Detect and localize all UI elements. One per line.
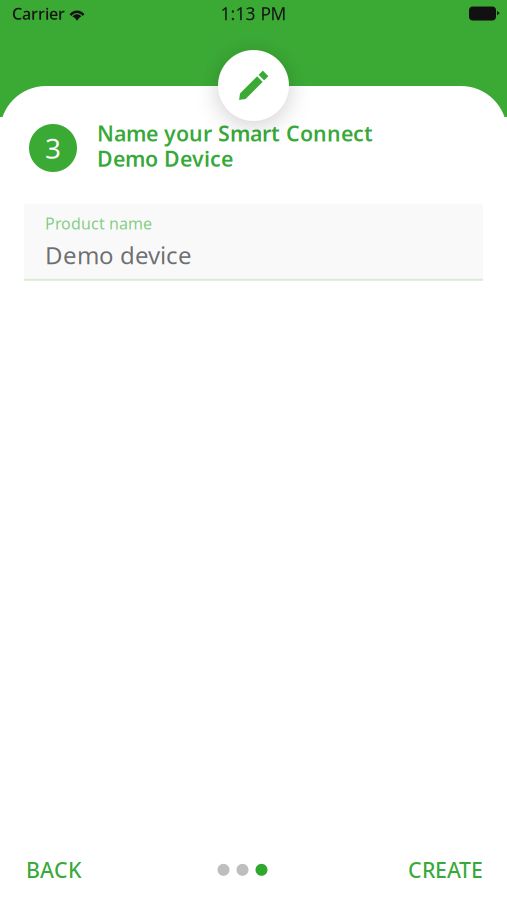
staticText: Product name — [45, 213, 152, 234]
staticText: BACK — [26, 856, 81, 884]
staticText: Name your Smart Connect — [97, 119, 373, 147]
staticText: Carrier — [12, 3, 65, 24]
staticText: 1:13 PM — [220, 2, 286, 25]
staticText: CREATE — [408, 856, 483, 884]
button[interactable]: CREATE — [384, 842, 507, 898]
staticText: Demo device — [45, 239, 192, 271]
staticText: 3 — [45, 129, 61, 167]
button[interactable]: BACK — [0, 842, 107, 898]
staticText: Demo Device — [97, 144, 233, 173]
